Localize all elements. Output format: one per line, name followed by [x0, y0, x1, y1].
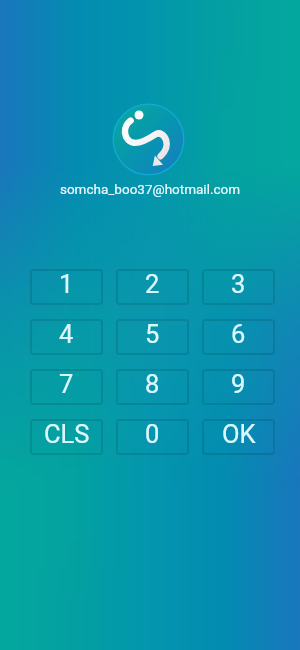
staticText: 7	[59, 369, 74, 399]
staticText: CLS	[44, 419, 90, 449]
button[interactable]: 9	[202, 369, 275, 405]
button[interactable]: 0	[116, 419, 189, 455]
button[interactable]: OK	[202, 419, 275, 455]
staticText: OK	[222, 419, 256, 449]
button[interactable]: 6	[202, 319, 275, 355]
staticText: 9	[231, 369, 246, 399]
button[interactable]: 3	[202, 269, 275, 305]
button[interactable]: 2	[116, 269, 189, 305]
staticText: 0	[145, 419, 160, 449]
staticText: somcha_boo37@hotmail.com	[0, 181, 300, 197]
button[interactable]: 4	[30, 319, 103, 355]
staticText: 6	[231, 319, 246, 349]
staticText: 1	[59, 269, 74, 299]
staticText: 3	[231, 269, 246, 299]
staticText: 4	[59, 319, 74, 349]
button[interactable]: 1	[30, 269, 103, 305]
button[interactable]: 8	[116, 369, 189, 405]
button[interactable]: 7	[30, 369, 103, 405]
staticText: 2	[145, 269, 160, 299]
button[interactable]: 5	[116, 319, 189, 355]
staticText: 8	[145, 369, 160, 399]
staticText: 5	[145, 319, 160, 349]
button[interactable]: CLS	[30, 419, 103, 455]
